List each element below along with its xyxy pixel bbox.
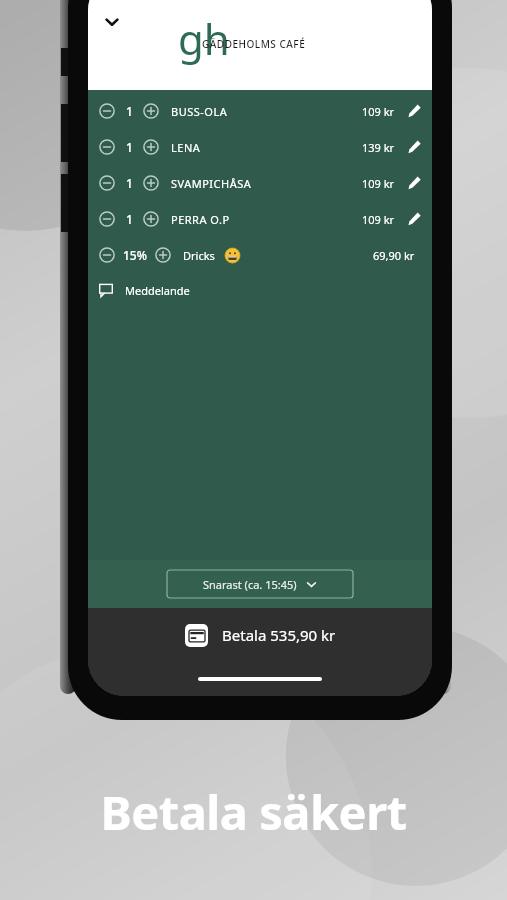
button[interactable]: Minska antal SVAMPICHÅSA xyxy=(96,172,118,194)
staticText: gh xyxy=(178,10,230,67)
button[interactable]: Minska antal PERRA O.P xyxy=(96,208,118,230)
button[interactable]: Redigera SVAMPICHÅSA xyxy=(405,174,423,192)
button[interactable]: Minska dricks xyxy=(96,244,118,266)
staticText: 69,90 kr xyxy=(373,248,415,263)
button[interactable]: Redigera PERRA O.P xyxy=(405,210,423,228)
staticText: 109 kr xyxy=(362,212,395,227)
button[interactable]: Minska antal LENA xyxy=(96,136,118,158)
button[interactable]: Minska antal LENA xyxy=(88,129,432,165)
staticText: 1 xyxy=(126,139,133,155)
staticText: LENA xyxy=(171,140,201,155)
staticText: GÄDDEHOLMS CAFÉ xyxy=(202,37,306,51)
button[interactable]: Meddelande xyxy=(88,273,432,307)
staticText: Betala säkert xyxy=(100,780,407,844)
staticText: Meddelande xyxy=(125,283,190,298)
staticText: 109 kr xyxy=(362,176,395,191)
staticText: 109 kr xyxy=(362,104,395,119)
button[interactable]: Öka antal PERRA O.P xyxy=(140,208,162,230)
button[interactable]: Öka antal SVAMPICHÅSA xyxy=(140,172,162,194)
staticText: PERRA O.P xyxy=(171,212,230,227)
button[interactable]: Stäng xyxy=(96,6,128,38)
button[interactable]: Minska antal SVAMPICHÅSA xyxy=(88,165,432,201)
staticText: 1 xyxy=(126,103,133,119)
button[interactable]: Minska antal PERRA O.P xyxy=(88,201,432,237)
button[interactable]: Redigera LENA xyxy=(405,138,423,156)
staticText: 15% xyxy=(123,247,147,263)
staticText: Snarast (ca. 15:45) xyxy=(203,577,297,592)
staticText: 1 xyxy=(126,175,133,191)
staticText: BUSS-OLA xyxy=(171,104,228,119)
button[interactable]: Redigera BUSS-OLA xyxy=(405,102,423,120)
button[interactable]: Minska antal BUSS-OLA xyxy=(96,100,118,122)
staticText: 139 kr xyxy=(362,140,395,155)
button[interactable]: Minska dricks xyxy=(88,237,432,273)
button[interactable]: Öka antal LENA xyxy=(140,136,162,158)
button[interactable]: Betala 535,90 kr xyxy=(88,608,432,662)
staticText: Betala 535,90 kr xyxy=(222,625,336,645)
staticText: Dricks xyxy=(183,248,215,263)
staticText: SVAMPICHÅSA xyxy=(171,176,252,191)
button[interactable]: Öka dricks xyxy=(152,244,174,266)
staticText: 1 xyxy=(126,211,133,227)
button[interactable]: Minska antal BUSS-OLA xyxy=(88,93,432,129)
button[interactable]: Snarast (ca. 15:45) xyxy=(167,570,353,598)
button[interactable]: Öka antal BUSS-OLA xyxy=(140,100,162,122)
